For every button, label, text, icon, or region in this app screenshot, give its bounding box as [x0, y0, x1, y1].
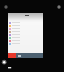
button[interactable] — [8, 42, 43, 45]
button[interactable] — [8, 24, 43, 27]
button[interactable] — [8, 21, 43, 24]
button[interactable] — [8, 33, 43, 36]
button[interactable] — [8, 36, 43, 39]
button[interactable] — [8, 27, 43, 30]
button[interactable] — [8, 39, 43, 42]
button[interactable] — [16, 53, 43, 58]
button[interactable] — [8, 30, 43, 33]
button[interactable]: More options — [55, 3, 62, 10]
button[interactable]: Back — [2, 3, 9, 10]
